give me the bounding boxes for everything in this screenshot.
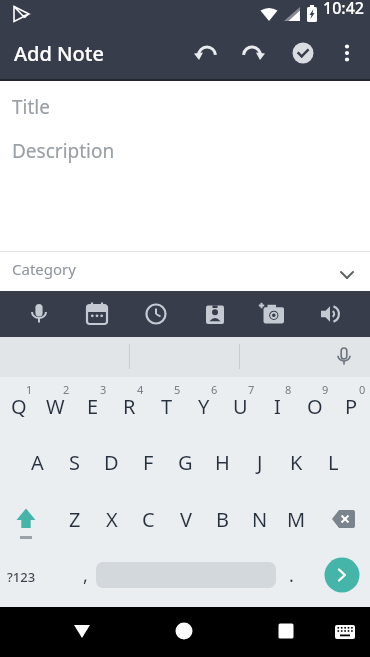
staticText: 7 [248,382,255,396]
button[interactable]: G [167,435,204,489]
staticText: . [289,563,294,588]
button[interactable] [195,294,235,334]
staticText: 3 [100,382,107,396]
staticText: Category [12,259,76,279]
button[interactable]: H [204,435,241,489]
button[interactable]: Z [56,492,93,546]
button[interactable] [77,294,117,334]
staticText: V [180,506,192,533]
button[interactable] [164,611,204,651]
staticText: Add Note [14,40,104,67]
button[interactable]: V [167,492,204,546]
button[interactable] [320,553,364,597]
button[interactable]: T [148,379,185,433]
staticText: A [31,449,44,476]
staticText: O [307,393,323,420]
button[interactable]: B [204,492,241,546]
staticText: K [290,449,303,476]
button[interactable]: W [37,379,74,433]
staticText: Z [69,506,81,533]
staticText: 1 [26,382,33,396]
staticText: B [216,506,229,533]
button[interactable] [283,33,323,73]
staticText: R [123,393,136,420]
button[interactable] [4,497,48,541]
staticText: 8 [285,382,292,396]
button[interactable]: Q [0,379,37,433]
button[interactable] [62,611,102,651]
button[interactable]: F [130,435,167,489]
staticText: 0 [359,382,366,396]
staticText: T [161,393,173,420]
button[interactable]: E [74,379,111,433]
staticText: , [83,563,88,588]
button[interactable]: R [111,379,148,433]
button[interactable]: D [93,435,130,489]
staticText: H [215,449,230,476]
button[interactable]: O [296,379,333,433]
staticText: I [274,393,281,420]
button[interactable]: I [259,379,296,433]
button[interactable]: U [222,379,259,433]
staticText: X [106,506,118,533]
button[interactable]: K [278,435,315,489]
button[interactable] [19,294,59,334]
staticText: F [143,449,154,476]
staticText: Title [12,94,50,120]
staticText: Description [12,138,115,164]
button[interactable] [232,33,272,73]
button[interactable] [266,611,306,651]
button[interactable] [327,33,367,73]
button[interactable]: M [278,492,315,546]
staticText: Q [11,393,27,420]
button[interactable]: Description [12,138,115,164]
staticText: 4 [137,382,144,396]
button[interactable]: L [315,435,352,489]
button[interactable]: P [333,379,370,433]
staticText: 6 [211,382,218,396]
staticText: C [142,506,155,533]
button[interactable]: Title [12,94,50,120]
staticText: U [233,393,248,420]
button[interactable] [327,340,361,374]
button[interactable] [0,550,44,604]
staticText: P [345,393,358,420]
staticText: 10:42 [323,0,364,19]
button[interactable]: A [19,435,56,489]
button[interactable] [0,337,370,377]
staticText: 5 [174,382,181,396]
button[interactable]: Category [0,252,370,291]
staticText: 2 [63,382,70,396]
button[interactable]: X [93,492,130,546]
staticText: Y [198,393,210,420]
button[interactable] [253,294,293,334]
staticText: M [287,506,306,533]
staticText: ?123 [7,568,36,586]
button[interactable] [187,33,227,73]
staticText: S [69,449,80,476]
staticText: J [257,449,263,476]
button[interactable] [322,497,366,541]
button[interactable]: Y [185,379,222,433]
button[interactable]: J [241,435,278,489]
staticText: W [46,393,65,420]
button[interactable] [311,294,351,334]
staticText: G [178,449,193,476]
button[interactable]: S [56,435,93,489]
button[interactable] [136,294,176,334]
staticText: 9 [322,382,329,396]
button[interactable] [325,612,365,652]
staticText: N [252,506,268,533]
button[interactable]: C [130,492,167,546]
staticText: E [87,393,99,420]
staticText: L [328,449,339,476]
button[interactable]: N [241,492,278,546]
staticText: D [104,449,119,476]
